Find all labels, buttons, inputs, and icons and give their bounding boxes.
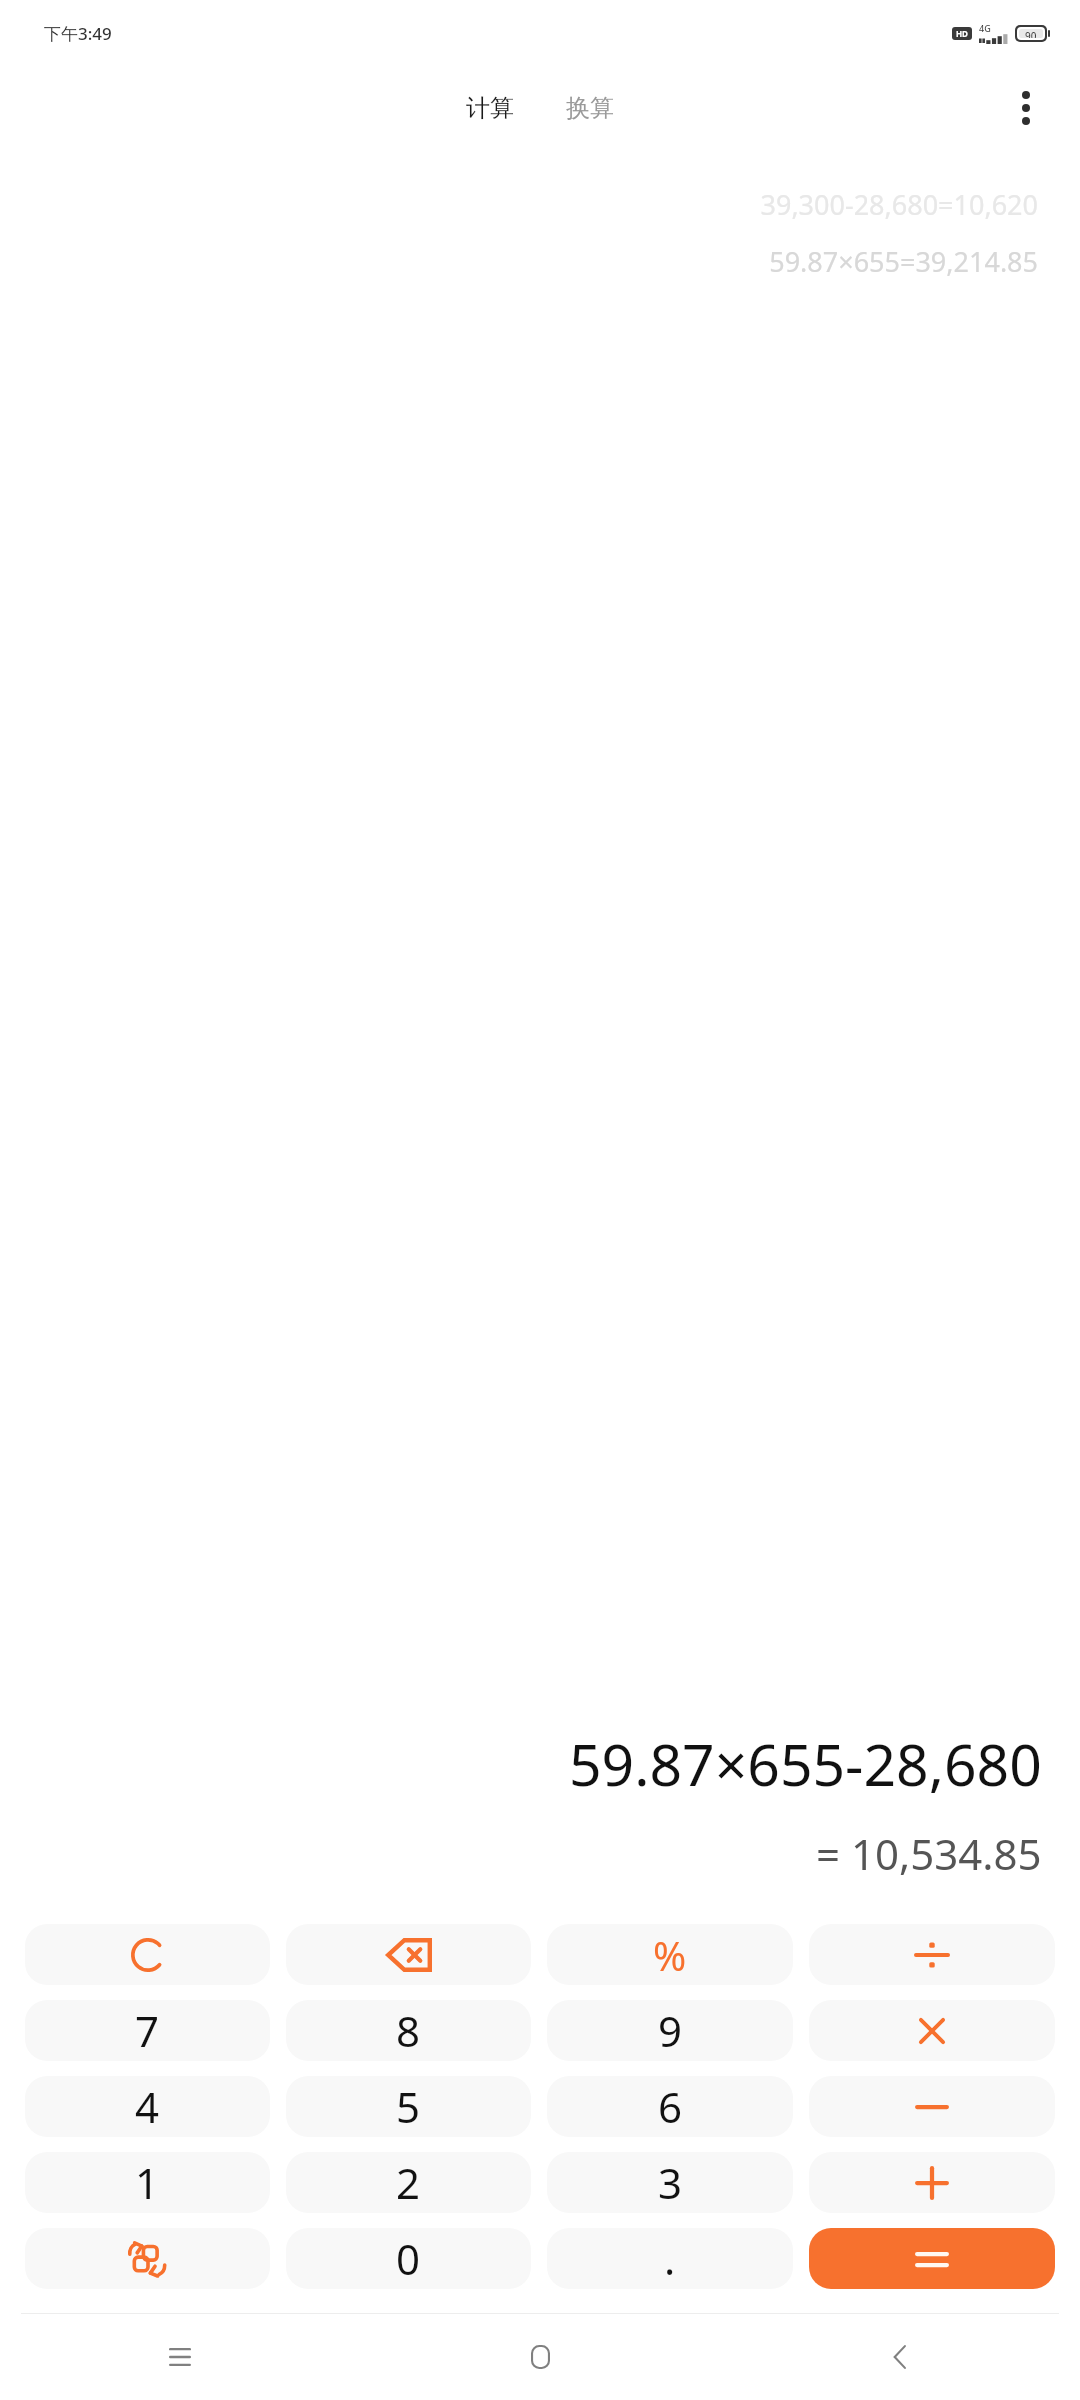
button[interactable]: Backspace — [286, 1924, 531, 1985]
button[interactable]: Plus — [809, 2152, 1055, 2213]
button[interactable]: Back — [720, 2314, 1080, 2400]
staticText: % — [653, 1928, 687, 1982]
button[interactable]: 9 — [547, 2000, 793, 2061]
staticText: 7 — [135, 2002, 160, 2059]
button[interactable]: 5 — [286, 2076, 531, 2137]
staticText: . — [664, 2230, 676, 2287]
button[interactable]: Home — [360, 2314, 720, 2400]
button[interactable] — [25, 1924, 270, 1985]
staticText: 5 — [396, 2078, 421, 2135]
staticText: 59.87×655-28,680 — [569, 1725, 1042, 1803]
staticText: 3 — [658, 2154, 683, 2211]
staticText: 计算 — [466, 93, 514, 123]
button[interactable]: Recent apps — [0, 2314, 360, 2400]
button[interactable]: . — [547, 2228, 793, 2289]
button[interactable]: Multiply — [809, 2000, 1055, 2061]
staticText: = 10,534.85 — [816, 1825, 1042, 1882]
button[interactable]: 7 — [25, 2000, 270, 2061]
button[interactable]: 2 — [286, 2152, 531, 2213]
button[interactable]: Minus — [809, 2076, 1055, 2137]
button[interactable]: 换算 — [552, 85, 628, 131]
staticText: 8 — [396, 2002, 421, 2059]
button[interactable]: % — [547, 1924, 793, 1985]
staticText: 2 — [396, 2154, 421, 2211]
staticText: HD — [956, 28, 968, 39]
staticText: 1 — [135, 2154, 160, 2211]
button[interactable]: 1 — [25, 2152, 270, 2213]
button[interactable]: Divide — [809, 1924, 1055, 1985]
button[interactable]: 计算 — [452, 85, 528, 131]
button[interactable]: Equals — [809, 2228, 1055, 2289]
button[interactable]: More options — [998, 80, 1054, 136]
staticText: 换算 — [566, 93, 614, 123]
staticText: 4G — [979, 22, 991, 34]
staticText: 39,300-28,680=10,620 — [760, 186, 1038, 223]
button[interactable]: 8 — [286, 2000, 531, 2061]
button[interactable]: 0 — [286, 2228, 531, 2289]
staticText: 4 — [135, 2078, 160, 2135]
staticText: 6 — [658, 2078, 683, 2135]
staticText: 0 — [396, 2230, 421, 2287]
staticText: 下午3:49 — [44, 22, 112, 45]
button[interactable]: 3 — [547, 2152, 793, 2213]
button[interactable]: Unit converter — [25, 2228, 270, 2289]
staticText: 90 — [1025, 29, 1037, 38]
button[interactable]: 4 — [25, 2076, 270, 2137]
staticText: 9 — [658, 2002, 683, 2059]
staticText: 59.87×655=39,214.85 — [769, 243, 1038, 280]
button[interactable]: 6 — [547, 2076, 793, 2137]
